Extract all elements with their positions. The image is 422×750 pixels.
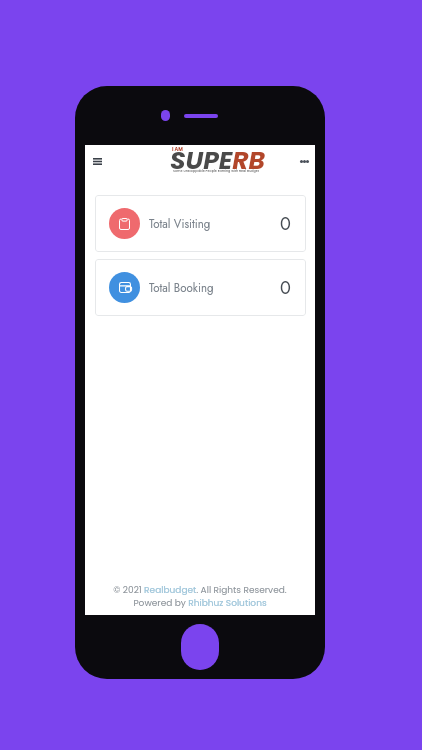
staticText: Total Visiting xyxy=(149,216,211,233)
button[interactable]: Total Booking xyxy=(95,259,306,316)
button[interactable]: More options xyxy=(293,150,315,172)
staticText: 0 xyxy=(280,275,291,301)
staticText: Powered by Rhibhuz Solutions xyxy=(133,597,267,610)
button[interactable]: Total Visiting xyxy=(95,195,306,252)
staticText: SUPERB xyxy=(170,143,266,178)
staticText: Some Unstoppable People Earning with Rea… xyxy=(173,169,260,174)
staticText: © 2021 Realbudget. All Rights Reserved. xyxy=(113,584,287,597)
staticText: I AM xyxy=(172,146,183,153)
button[interactable]: Menu xyxy=(86,150,108,172)
staticText: Total Booking xyxy=(149,280,214,297)
staticText: 0 xyxy=(280,211,291,237)
